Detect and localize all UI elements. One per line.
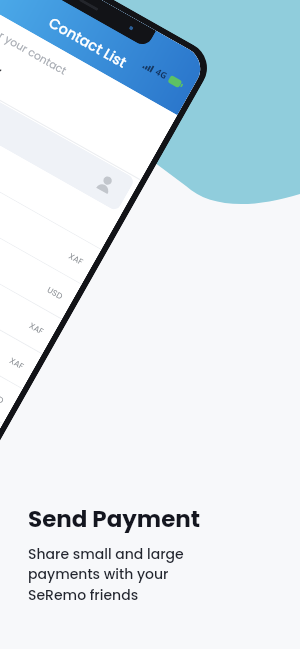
button[interactable]: XAF <box>0 138 101 285</box>
button[interactable]: Jay <box>0 103 121 250</box>
staticText: XAF <box>67 250 85 267</box>
button[interactable]: USD <box>0 277 22 424</box>
staticText: 4G <box>153 66 170 82</box>
staticText: USD <box>45 284 66 302</box>
button[interactable] <box>0 72 136 212</box>
button[interactable]: USD <box>0 173 81 320</box>
staticText: USD <box>0 388 7 406</box>
staticText: XAF <box>28 319 46 336</box>
staticText: Contact List <box>45 13 131 73</box>
button[interactable]: XAF <box>0 312 3 459</box>
staticText: Enter your contact <box>0 17 70 79</box>
button[interactable]: Andrew <box>0 34 160 180</box>
staticText: XAF <box>8 354 26 371</box>
button[interactable]: Enter your contact <box>0 8 169 141</box>
button[interactable]: XAF <box>0 208 62 354</box>
button[interactable]: XAF <box>0 243 42 389</box>
staticText: Share small and large payments with your… <box>28 544 184 605</box>
staticText: Andrew <box>0 45 5 79</box>
staticText: Send Payment <box>28 503 201 535</box>
